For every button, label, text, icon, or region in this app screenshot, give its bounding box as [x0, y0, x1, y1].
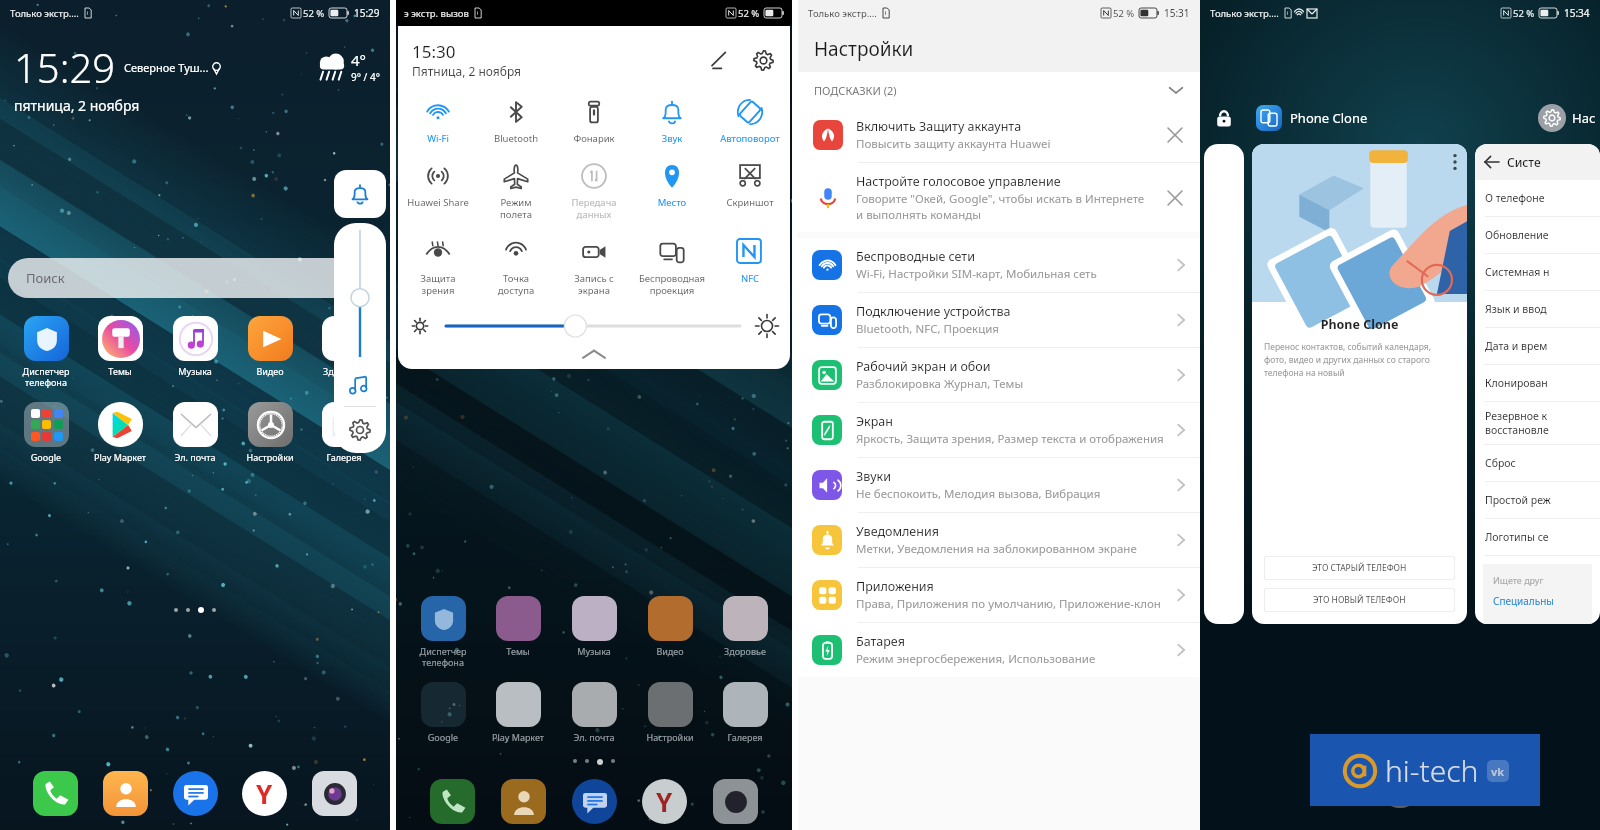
button[interactable] [173, 402, 218, 447]
button[interactable]: Запись с экрана [556, 235, 632, 301]
button[interactable]: Место [634, 159, 710, 213]
button[interactable]: Wi-Fi [400, 95, 476, 149]
button[interactable] [572, 682, 617, 727]
staticText: Фонарик [556, 132, 632, 145]
button[interactable] [430, 779, 475, 824]
button[interactable]: Сброс [1485, 445, 1600, 481]
button[interactable] [248, 402, 293, 447]
staticText: 52 % [738, 7, 760, 20]
button[interactable]: Включить Защиту аккаунта [798, 108, 1200, 162]
staticText: Диспетчер телефона [410, 645, 476, 668]
button[interactable]: Настройте голосовое управление [798, 163, 1200, 232]
button[interactable]: Беспроводная проекция [634, 235, 710, 301]
staticText: Phone Clone [1290, 109, 1368, 127]
button[interactable]: Ring mode [334, 170, 386, 218]
staticText: Уведомления [856, 523, 939, 540]
button[interactable]: Dismiss [1162, 122, 1188, 148]
button[interactable] [501, 779, 546, 824]
button[interactable]: Y [642, 779, 687, 824]
button[interactable]: ЭТО СТАРЫЙ ТЕЛЕФОН [1264, 556, 1455, 580]
button[interactable]: Clear all [1379, 766, 1421, 808]
button[interactable]: Режим полета [478, 159, 554, 225]
staticText: 52 % [1113, 7, 1135, 20]
button[interactable]: Уведомления [798, 513, 1200, 567]
button[interactable] [713, 779, 758, 824]
button[interactable]: Huawei Share [400, 159, 476, 213]
button[interactable]: Дата и врем [1485, 328, 1600, 364]
button[interactable] [98, 316, 143, 361]
button[interactable] [421, 596, 466, 641]
staticText: Режим энергосбережения, Использование [856, 651, 1096, 667]
button[interactable] [572, 596, 617, 641]
staticText: Здоровье [311, 365, 377, 377]
button[interactable]: Защита зрения [400, 235, 476, 301]
button[interactable] [24, 402, 69, 447]
staticText: Y [256, 776, 273, 811]
staticText: Автоповорот [712, 132, 788, 145]
button[interactable] [173, 316, 218, 361]
staticText: 15:30 [412, 40, 456, 63]
button[interactable]: NFC [712, 235, 788, 289]
staticText: Подключение устройства [856, 303, 1011, 320]
button[interactable]: Приложения [798, 568, 1200, 622]
button[interactable]: О телефоне [1485, 180, 1600, 216]
button[interactable] [173, 771, 218, 816]
button[interactable] [103, 771, 148, 816]
button[interactable]: Подключение устройства [798, 293, 1200, 347]
button[interactable] [322, 316, 367, 361]
button[interactable] [33, 771, 78, 816]
button[interactable]: Рабочий экран и обои [798, 348, 1200, 402]
button[interactable]: Edit [704, 45, 734, 75]
button[interactable] [723, 682, 768, 727]
button[interactable]: Простой реж [1485, 482, 1600, 518]
button[interactable]: Язык и ввод [1485, 291, 1600, 327]
button[interactable]: Collapse [398, 341, 790, 367]
button[interactable] [312, 771, 357, 816]
button[interactable]: Звук [634, 95, 710, 149]
button[interactable]: Звуки [798, 458, 1200, 512]
button[interactable] [248, 316, 293, 361]
button[interactable]: ПОДСКАЗКИ (2) [814, 72, 1184, 108]
button[interactable]: Точка доступа [478, 235, 554, 301]
button[interactable]: Обновление [1485, 217, 1600, 253]
button[interactable] [421, 682, 466, 727]
button[interactable]: Y [242, 771, 287, 816]
button[interactable] [322, 402, 367, 447]
button[interactable]: Фонарик [556, 95, 632, 149]
staticText: Диспетчер телефона [13, 365, 79, 388]
button[interactable]: Dismiss [1162, 185, 1188, 211]
button[interactable] [496, 596, 541, 641]
button[interactable]: Передача данных [556, 159, 632, 225]
staticText: Повысить защиту аккаунта Huawei [856, 136, 1051, 152]
button[interactable] [98, 402, 143, 447]
button[interactable]: Батарея [798, 623, 1200, 677]
button[interactable]: Клонирован [1485, 365, 1600, 401]
button[interactable]: Системная н [1485, 254, 1600, 290]
button[interactable] [24, 316, 69, 361]
staticText: Разблокировка Журнал, Темы [856, 376, 1024, 392]
staticText: Темы [485, 645, 551, 657]
staticText: 9° / 4° [351, 70, 380, 84]
button[interactable]: Скриншот [712, 159, 788, 213]
staticText: Звук [634, 132, 710, 145]
button[interactable]: Логотипы се [1485, 519, 1600, 555]
button[interactable]: Автоповорот [712, 95, 788, 149]
button[interactable]: Экран [798, 403, 1200, 457]
button[interactable]: Settings [748, 45, 778, 75]
button[interactable] [648, 596, 693, 641]
staticText: Обновление [1485, 228, 1549, 242]
button[interactable] [496, 682, 541, 727]
button[interactable]: Беспроводные сети [798, 238, 1200, 292]
staticText: Bluetooth, NFC, Проекция [856, 321, 999, 337]
button[interactable] [572, 779, 617, 824]
button[interactable]: Bluetooth [478, 95, 554, 149]
button[interactable]: Поиск [8, 258, 382, 298]
staticText: 4° [351, 50, 367, 70]
staticText: Только экстр.... [808, 7, 877, 20]
staticText: vk [1491, 764, 1505, 779]
button[interactable]: ЭТО НОВЫЙ ТЕЛЕФОН [1264, 588, 1455, 612]
button[interactable] [648, 682, 693, 727]
button[interactable] [723, 596, 768, 641]
staticText: Звуки [856, 468, 891, 485]
button[interactable]: Резервное к восстановле [1485, 402, 1600, 444]
